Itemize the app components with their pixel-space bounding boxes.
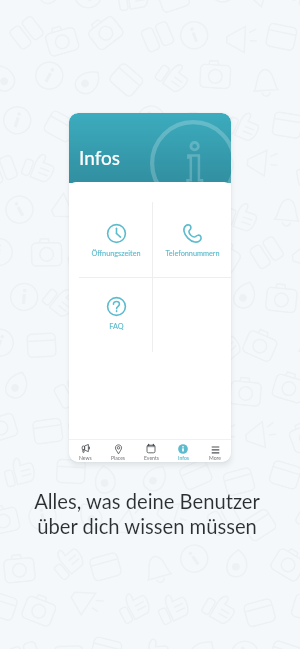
- button[interactable]: Öffnungszeiten: [78, 202, 154, 275]
- staticText: Places: [111, 455, 126, 461]
- staticText: Alles, was deine Benutzer: [34, 489, 260, 513]
- staticText: über dich wissen müssen: [37, 514, 257, 538]
- button[interactable]: Events: [135, 439, 167, 462]
- button[interactable]: More: [199, 439, 231, 462]
- button[interactable]: News: [69, 439, 102, 462]
- button[interactable]: Telefonnummern: [154, 202, 230, 275]
- button[interactable]: Places: [102, 439, 135, 462]
- button[interactable]: Infos: [167, 439, 199, 462]
- staticText: More: [209, 455, 221, 461]
- staticText: News: [79, 455, 92, 461]
- staticText: Events: [144, 455, 159, 461]
- button[interactable]: FAQ: [78, 275, 154, 348]
- staticText: Infos: [178, 455, 189, 461]
- staticText: FAQ: [109, 322, 124, 331]
- staticText: Telefonnummern: [165, 249, 220, 258]
- staticText: Infos: [79, 146, 120, 169]
- staticText: Öffnungszeiten: [91, 249, 141, 258]
